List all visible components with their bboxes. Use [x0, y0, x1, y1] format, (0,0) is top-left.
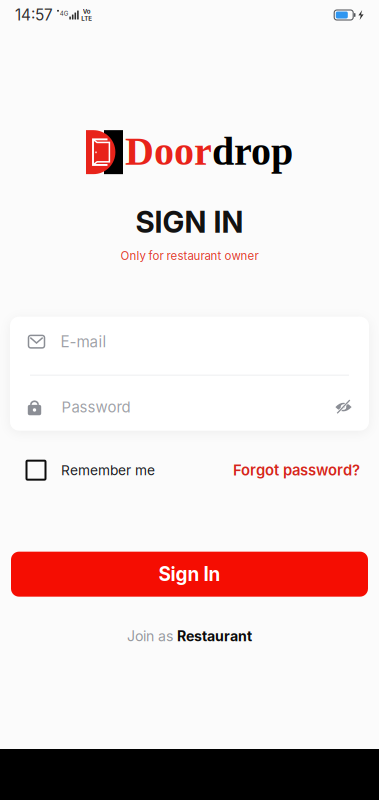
button[interactable]: Remember me — [26, 461, 155, 480]
staticText: Only for restaurant owner — [120, 249, 258, 263]
staticText: Forgot password? — [233, 461, 360, 479]
staticText: 4G — [60, 10, 69, 17]
staticText: Remember me — [61, 462, 155, 478]
staticText: Door — [125, 129, 212, 173]
staticText: SIGN IN — [135, 204, 243, 240]
staticText: Sign In — [158, 563, 220, 586]
button[interactable]: Sign In — [11, 552, 368, 597]
staticText: Password — [61, 398, 130, 416]
button[interactable]: Join as — [127, 628, 252, 645]
staticText: LTE — [81, 15, 92, 22]
staticText: Join as — [127, 628, 173, 645]
staticText: E-mail — [60, 332, 106, 351]
staticText: Restaurant — [177, 628, 252, 645]
staticText: drop — [212, 129, 293, 173]
button[interactable]: Forgot password? — [233, 461, 360, 479]
staticText: Vo — [83, 8, 91, 15]
staticText: 14:57 — [15, 6, 53, 24]
button[interactable]: Show password — [335, 401, 352, 414]
